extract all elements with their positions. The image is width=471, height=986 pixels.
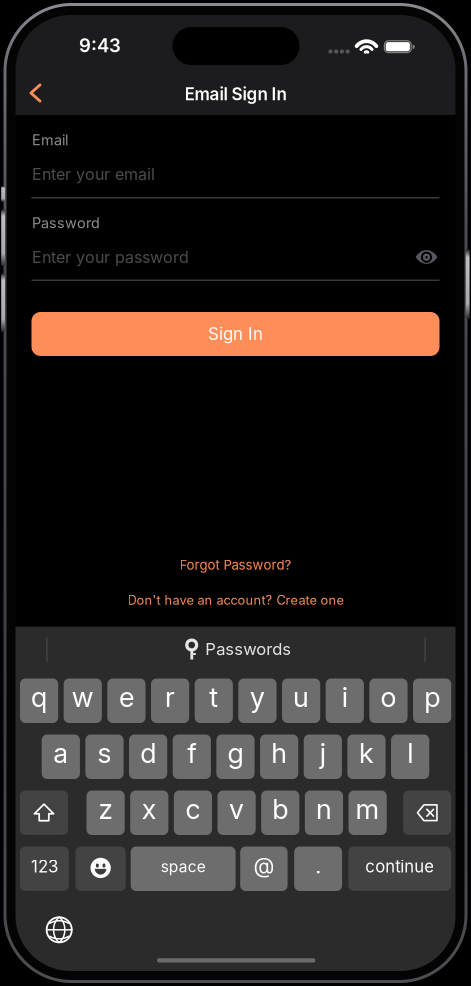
button[interactable]: Don't have an account? Create one bbox=[75, 588, 395, 612]
staticText: Enter your password bbox=[32, 247, 189, 267]
staticText: f bbox=[187, 736, 196, 769]
button[interactable]: a bbox=[42, 734, 80, 779]
button[interactable]: f bbox=[173, 734, 211, 779]
button[interactable]: @ bbox=[240, 846, 288, 891]
button[interactable]: v bbox=[217, 790, 256, 835]
staticText: Password bbox=[32, 214, 100, 232]
button[interactable]: . bbox=[294, 846, 342, 891]
button[interactable]: o bbox=[369, 678, 408, 723]
button[interactable]: space bbox=[131, 846, 236, 891]
button[interactable]: l bbox=[391, 734, 429, 779]
button[interactable]: t bbox=[195, 678, 233, 723]
button[interactable]: d bbox=[129, 734, 167, 779]
staticText: m bbox=[356, 792, 380, 825]
staticText: Email Sign In bbox=[184, 84, 286, 104]
staticText: q bbox=[31, 680, 47, 713]
staticText: h bbox=[271, 736, 287, 769]
button[interactable]: continue bbox=[348, 846, 451, 891]
staticText: Email bbox=[32, 131, 68, 149]
button[interactable]: Passwords bbox=[185, 637, 305, 661]
staticText: 9:43 bbox=[79, 34, 121, 57]
button[interactable]: Show password bbox=[406, 242, 446, 272]
staticText: k bbox=[359, 736, 374, 769]
button[interactable]: u bbox=[282, 678, 320, 723]
staticText: c bbox=[185, 792, 200, 825]
button[interactable]: Sign In bbox=[31, 312, 439, 356]
button[interactable]: c bbox=[174, 790, 212, 835]
button[interactable]: 123 bbox=[20, 846, 69, 891]
staticText: Don't have an account? Create one bbox=[127, 592, 343, 608]
staticText: n bbox=[316, 792, 332, 825]
staticText: o bbox=[380, 680, 396, 713]
staticText: x bbox=[142, 792, 157, 825]
staticText: Enter your email bbox=[32, 164, 155, 184]
staticText: u bbox=[293, 680, 309, 713]
button[interactable]: j bbox=[304, 734, 342, 779]
button[interactable]: e bbox=[107, 678, 145, 723]
staticText: z bbox=[99, 792, 113, 825]
button[interactable]: m bbox=[348, 790, 387, 835]
staticText: d bbox=[140, 736, 156, 769]
staticText: l bbox=[407, 736, 413, 769]
staticText: s bbox=[97, 736, 111, 769]
staticText: r bbox=[165, 680, 175, 713]
button[interactable]: Enter your password bbox=[31, 242, 401, 282]
staticText: Sign In bbox=[208, 324, 263, 344]
button[interactable]: s bbox=[85, 734, 124, 779]
staticText: j bbox=[320, 736, 326, 769]
staticText: Forgot Password? bbox=[179, 557, 291, 573]
staticText: v bbox=[229, 792, 244, 825]
staticText: a bbox=[53, 736, 68, 769]
button[interactable]: Back bbox=[16, 72, 54, 114]
button[interactable]: z bbox=[86, 790, 125, 835]
button[interactable]: h bbox=[260, 734, 298, 779]
staticText: y bbox=[250, 680, 265, 713]
button[interactable]: g bbox=[216, 734, 255, 779]
button[interactable]: i bbox=[326, 678, 364, 723]
button[interactable]: b bbox=[261, 790, 299, 835]
button[interactable]: y bbox=[238, 678, 277, 723]
staticText: . bbox=[315, 853, 321, 879]
staticText: w bbox=[72, 680, 94, 713]
staticText: b bbox=[272, 792, 288, 825]
button[interactable]: w bbox=[64, 678, 102, 723]
staticText: space bbox=[161, 857, 206, 876]
staticText: Passwords bbox=[205, 639, 291, 659]
staticText: e bbox=[119, 680, 134, 713]
staticText: g bbox=[227, 736, 243, 769]
button[interactable]: q bbox=[20, 678, 58, 723]
staticText: continue bbox=[365, 856, 434, 877]
staticText: i bbox=[342, 680, 348, 713]
staticText: p bbox=[424, 680, 440, 713]
button[interactable]: Next keyboard bbox=[46, 916, 73, 943]
staticText: 123 bbox=[31, 856, 58, 877]
button[interactable]: Emoji bbox=[76, 846, 126, 891]
button[interactable]: x bbox=[130, 790, 168, 835]
button[interactable]: k bbox=[347, 734, 386, 779]
button[interactable]: Enter your email bbox=[31, 159, 439, 199]
button[interactable]: Delete bbox=[403, 790, 451, 835]
button[interactable]: Shift bbox=[20, 790, 68, 835]
staticText: t bbox=[209, 680, 218, 713]
staticText: @ bbox=[253, 853, 274, 879]
button[interactable]: Forgot Password? bbox=[125, 553, 345, 577]
button[interactable]: p bbox=[413, 678, 451, 723]
button[interactable]: r bbox=[151, 678, 189, 723]
button[interactable]: n bbox=[305, 790, 343, 835]
